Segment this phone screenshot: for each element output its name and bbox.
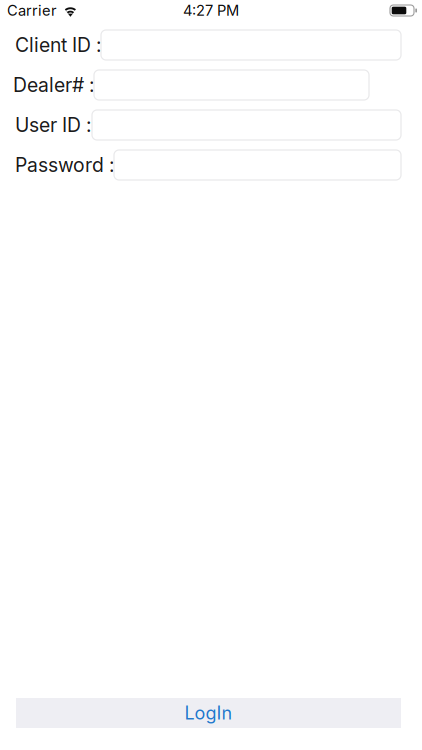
button[interactable]: Client ID: [101, 30, 401, 60]
button[interactable]: Dealer number: [94, 70, 369, 100]
button[interactable]: Password: [114, 150, 401, 180]
staticText: Dealer# :: [13, 73, 95, 97]
staticText: User ID :: [15, 113, 92, 137]
staticText: LogIn: [184, 702, 232, 724]
staticText: Carrier: [7, 2, 57, 19]
staticText: Password :: [15, 153, 115, 177]
button[interactable]: LogIn: [16, 698, 401, 728]
staticText: 4:27 PM: [183, 2, 239, 19]
button[interactable]: User ID: [92, 110, 401, 140]
staticText: Client ID :: [15, 33, 102, 57]
